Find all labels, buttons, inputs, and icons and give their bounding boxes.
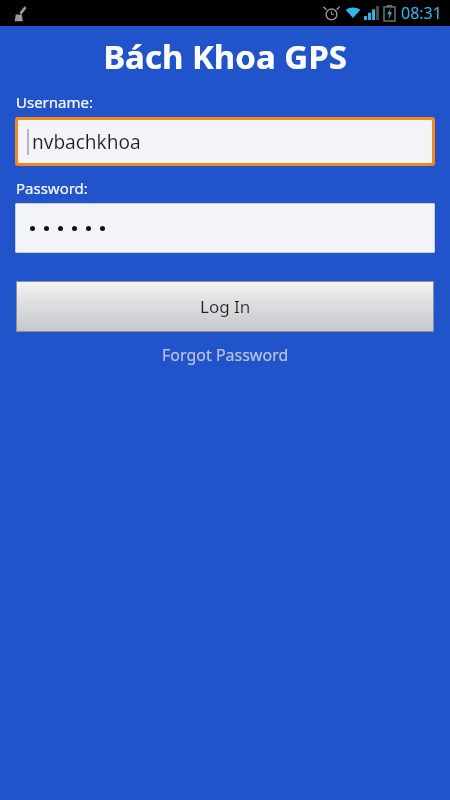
- button[interactable]: Forgot Password: [152, 341, 299, 369]
- staticText: nvbachkhoa: [32, 129, 141, 155]
- staticText: Password:: [16, 178, 88, 198]
- staticText: Username:: [16, 92, 93, 112]
- staticText: Bách Khoa GPS: [103, 34, 347, 79]
- staticText: Log In: [200, 295, 251, 318]
- button[interactable]: nvbachkhoa: [15, 117, 435, 166]
- button[interactable]: Log In: [16, 281, 434, 332]
- staticText: 08:31: [401, 2, 442, 24]
- button[interactable]: [15, 203, 435, 253]
- staticText: Forgot Password: [162, 344, 289, 366]
